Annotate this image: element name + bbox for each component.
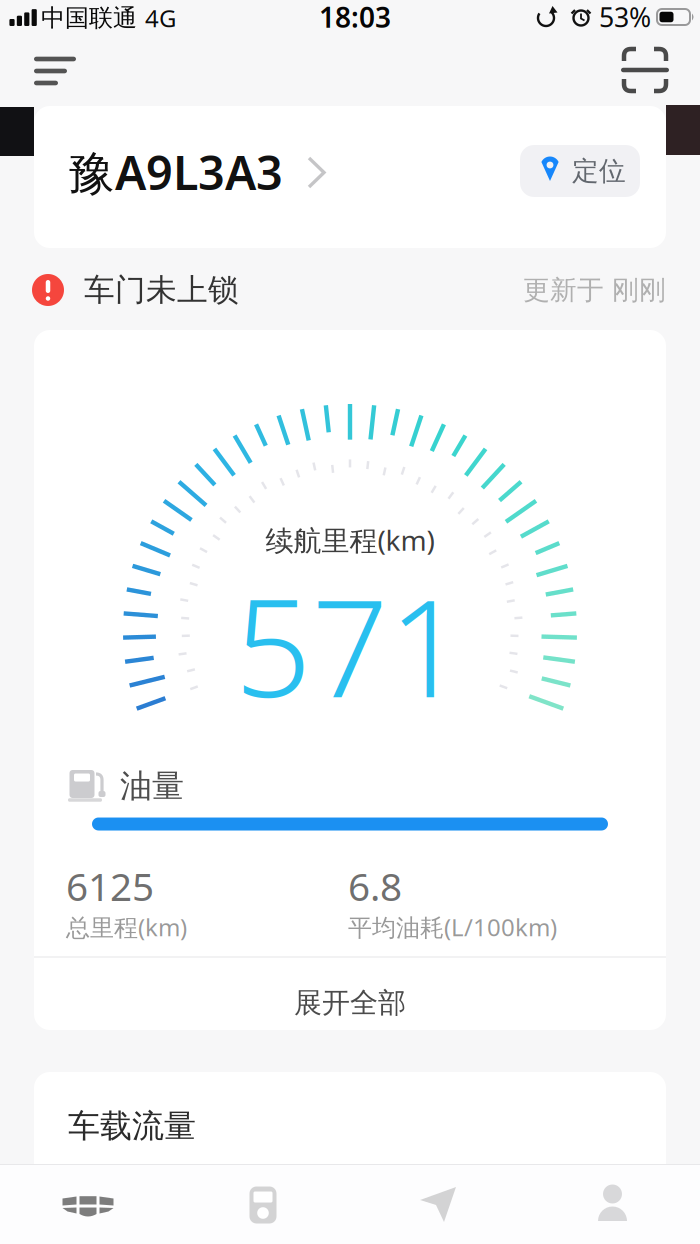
staticText: 更新于 刚刚 xyxy=(523,274,666,306)
staticText: 续航里程(km) xyxy=(265,521,434,559)
staticText: 展开全部 xyxy=(294,986,406,1020)
staticText: 豫A9L3A3 xyxy=(68,141,283,203)
staticText: 平均油耗(L/100km) xyxy=(348,911,557,943)
staticText: 车载流量 xyxy=(68,1106,196,1146)
staticText: 油量 xyxy=(120,766,184,806)
staticText: 定位 xyxy=(572,155,626,187)
staticText: 总里程(km) xyxy=(66,911,187,943)
button[interactable] xyxy=(175,1164,350,1244)
staticText: 4G xyxy=(145,2,176,34)
button[interactable] xyxy=(600,38,690,102)
button[interactable]: 展开全部 xyxy=(34,958,666,1030)
staticText: 53% xyxy=(599,0,651,35)
staticText: 车门未上锁 xyxy=(84,271,239,309)
staticText: 571 xyxy=(234,556,465,734)
staticText: 18:03 xyxy=(319,0,391,36)
staticText: 中国联通 xyxy=(41,3,137,33)
button[interactable] xyxy=(34,106,666,248)
staticText: 6125 xyxy=(66,860,154,912)
button[interactable] xyxy=(525,1164,700,1244)
button[interactable] xyxy=(0,1164,175,1244)
button[interactable]: 定位 xyxy=(520,145,640,197)
button[interactable] xyxy=(350,1164,525,1244)
staticText: 6.8 xyxy=(348,860,402,912)
button[interactable] xyxy=(0,39,90,103)
